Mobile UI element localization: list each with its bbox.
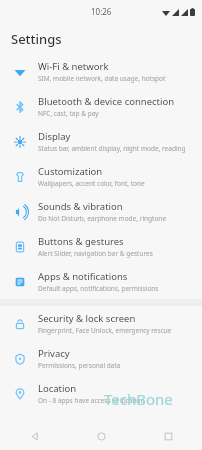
staticText: Customization: [38, 165, 103, 178]
staticText: SIM, mobile network, data usage, hotspot: [38, 74, 166, 83]
staticText: TechBone: [104, 389, 173, 409]
button[interactable]: Security & lock screen: [0, 306, 202, 341]
button[interactable]: Display: [0, 124, 202, 159]
staticText: Sounds & vibration: [38, 200, 123, 213]
button[interactable]: Bluetooth & device connection: [0, 89, 202, 124]
button[interactable]: Wi-Fi & network: [0, 54, 202, 89]
staticText: Buttons & gestures: [38, 235, 124, 248]
staticText: Fingerprint, Face Unlock, emergency resc…: [38, 326, 172, 335]
button[interactable]: Sounds & vibration: [0, 194, 202, 229]
staticText: Wallpapers, accent color, font, tone: [38, 179, 145, 188]
button[interactable]: Home: [68, 422, 135, 450]
staticText: Default apps, notifications, permissions: [38, 284, 159, 293]
button[interactable]: Recent apps: [135, 422, 202, 450]
button[interactable]: Apps & notifications: [0, 264, 202, 299]
staticText: Wi-Fi & network: [38, 60, 109, 73]
staticText: Do Not Disturb, earphone mode, ringtone: [38, 214, 167, 223]
staticText: Permissions, personal data: [38, 361, 121, 370]
button[interactable]: Customization: [0, 159, 202, 194]
staticText: On - 8 apps have access to location: [38, 396, 145, 405]
staticText: Location: [38, 382, 77, 395]
staticText: NFC, cast, tap & pay: [38, 109, 99, 118]
staticText: Settings: [11, 30, 62, 48]
staticText: Alert Slider, navigation bar & gestures: [38, 249, 153, 258]
staticText: Security & lock screen: [38, 312, 136, 325]
staticText: Privacy: [38, 347, 70, 360]
staticText: Status bar, ambient display, night mode,…: [38, 144, 192, 153]
staticText: Display: [38, 130, 71, 143]
button[interactable]: Location: [0, 376, 202, 411]
staticText: Bluetooth & device connection: [38, 95, 175, 108]
button[interactable]: Back: [0, 422, 68, 450]
button[interactable]: Buttons & gestures: [0, 229, 202, 264]
button[interactable]: Battery: [0, 411, 202, 446]
staticText: Apps & notifications: [38, 270, 128, 283]
button[interactable]: Privacy: [0, 341, 202, 376]
staticText: 10:26: [91, 6, 112, 17]
